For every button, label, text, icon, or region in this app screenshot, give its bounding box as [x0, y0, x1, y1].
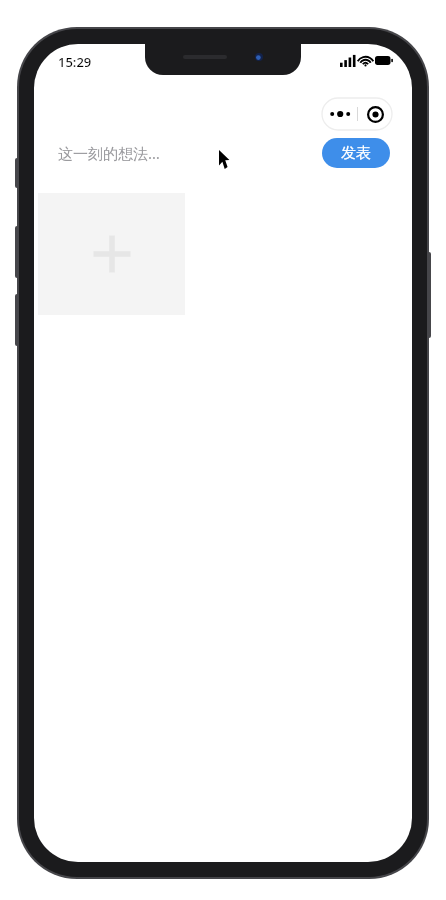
button[interactable]: 发表 [322, 138, 390, 168]
staticText: 这一刻的想法… [58, 143, 160, 163]
button[interactable]: More [322, 98, 392, 130]
staticText: 15:29 [58, 53, 92, 71]
button[interactable]: Close [358, 98, 392, 130]
button[interactable]: 这一刻的想法… [50, 136, 290, 170]
staticText: 发表 [341, 144, 371, 163]
button[interactable]: More [322, 98, 357, 130]
